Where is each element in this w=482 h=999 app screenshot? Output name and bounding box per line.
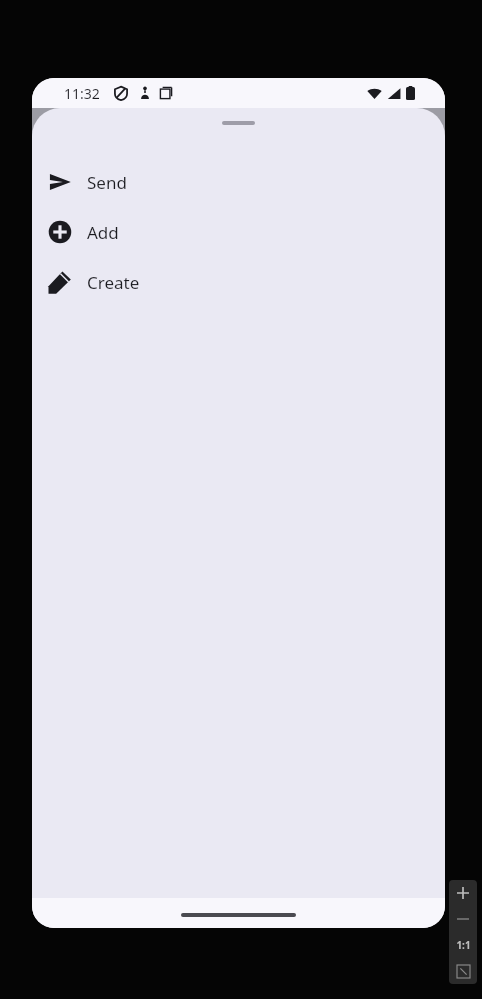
button[interactable]: Zoom in: [449, 880, 477, 906]
button[interactable]: Send: [32, 157, 445, 207]
button[interactable]: Fit to screen: [449, 958, 477, 984]
button[interactable]: Zoom out: [449, 906, 477, 932]
staticText: Create: [87, 271, 140, 294]
staticText: 11:32: [64, 84, 100, 103]
button[interactable]: 1:1: [449, 932, 477, 958]
button[interactable]: Add: [32, 207, 445, 257]
staticText: Add: [87, 221, 119, 244]
staticText: Send: [87, 171, 127, 194]
staticText: 1:1: [456, 938, 471, 952]
button[interactable]: Create: [32, 257, 445, 307]
